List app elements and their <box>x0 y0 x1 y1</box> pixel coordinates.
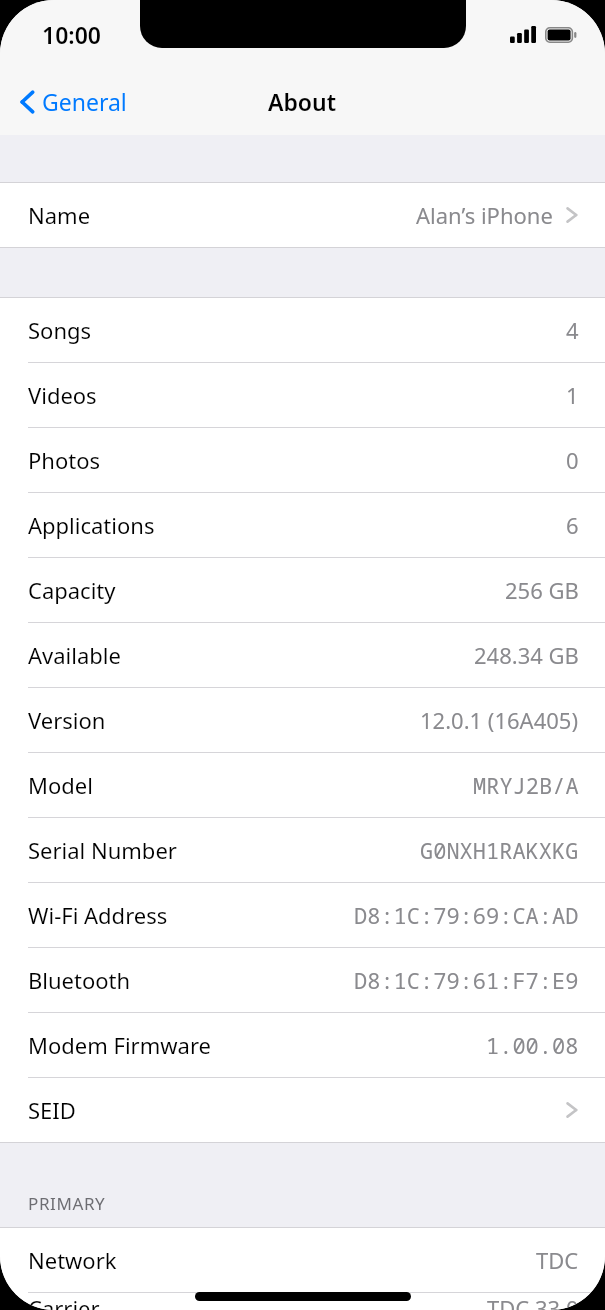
staticText: Alan’s iPhone <box>416 200 553 230</box>
button[interactable]: Version <box>0 688 605 752</box>
button[interactable]: Songs <box>0 298 605 362</box>
button[interactable]: Network <box>0 1228 605 1292</box>
button[interactable]: Available <box>0 623 605 687</box>
button[interactable]: Model <box>0 753 605 817</box>
button[interactable]: General <box>0 78 141 125</box>
staticText: Photos <box>28 445 101 475</box>
staticText: Available <box>28 640 121 670</box>
staticText: Wi-Fi Address <box>28 900 168 930</box>
staticText: About <box>268 86 337 117</box>
staticText: D8:1C:79:61:F7:E9 <box>354 965 579 995</box>
staticText: 0 <box>566 445 579 475</box>
staticText: Modem Firmware <box>28 1030 211 1060</box>
staticText: General <box>42 86 127 117</box>
button[interactable]: Name <box>0 183 605 247</box>
staticText: Model <box>28 770 93 800</box>
staticText: Songs <box>28 315 92 345</box>
staticText: 12.0.1 (16A405) <box>420 705 579 735</box>
staticText: Applications <box>28 510 155 540</box>
staticText: 248.34 GB <box>474 640 579 670</box>
staticText: Videos <box>28 380 97 410</box>
button[interactable]: Wi-Fi Address <box>0 883 605 947</box>
button[interactable]: SEID <box>0 1078 605 1142</box>
button[interactable]: Applications <box>0 493 605 557</box>
staticText: Name <box>28 200 91 230</box>
staticText: 256 GB <box>505 575 579 605</box>
staticText: 1.00.08 <box>486 1030 579 1060</box>
button[interactable]: Photos <box>0 428 605 492</box>
staticText: D8:1C:79:69:CA:AD <box>354 900 579 930</box>
staticText: Version <box>28 705 106 735</box>
staticText: PRIMARY <box>28 1192 106 1215</box>
staticText: 1 <box>566 380 579 410</box>
staticText: SEID <box>28 1095 76 1125</box>
staticText: Network <box>28 1245 117 1275</box>
button[interactable]: Videos <box>0 363 605 427</box>
staticText: 6 <box>566 510 579 540</box>
staticText: 10:00 <box>42 19 101 50</box>
other: Home indicator <box>195 1292 411 1301</box>
staticText: Carrier <box>28 1293 100 1310</box>
button[interactable]: Carrier <box>0 1293 605 1310</box>
button[interactable]: Capacity <box>0 558 605 622</box>
staticText: Bluetooth <box>28 965 131 995</box>
staticText: TDC 33.0 <box>487 1293 579 1310</box>
staticText: Capacity <box>28 575 116 605</box>
staticText: TDC <box>536 1245 579 1275</box>
staticText: G0NXH1RAKXKG <box>420 835 579 865</box>
staticText: MRYJ2B/A <box>473 770 579 800</box>
button[interactable]: Serial Number <box>0 818 605 882</box>
staticText: Serial Number <box>28 835 177 865</box>
staticText: 4 <box>566 315 579 345</box>
button[interactable]: Bluetooth <box>0 948 605 1012</box>
button[interactable]: Modem Firmware <box>0 1013 605 1077</box>
